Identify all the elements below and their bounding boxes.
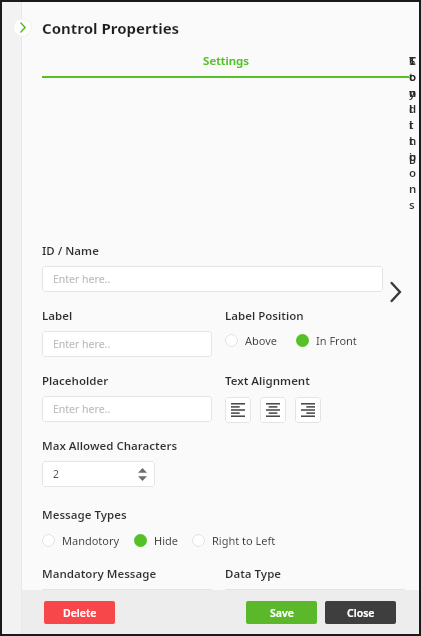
staticText: ID / Name xyxy=(42,243,99,259)
button[interactable]: Right to Left xyxy=(192,533,276,548)
staticText: Text Alignment xyxy=(225,373,310,389)
button[interactable]: Settings xyxy=(42,53,409,78)
staticText: Control Properties xyxy=(42,18,180,38)
staticText: Save xyxy=(270,606,294,620)
button[interactable]: Above xyxy=(225,333,278,348)
staticText: Right to Left xyxy=(212,533,276,548)
button[interactable]: Align center xyxy=(260,397,286,423)
staticText: Placeholder xyxy=(42,373,109,389)
button[interactable]: In Front xyxy=(296,333,357,348)
staticText: Mandatory Message xyxy=(42,566,157,582)
staticText: Enter here.. xyxy=(53,272,111,286)
staticText: Message Types xyxy=(42,507,127,523)
staticText: Delete xyxy=(63,606,97,620)
button[interactable]: Enter here.. xyxy=(42,266,383,292)
staticText: Enter here.. xyxy=(53,337,111,351)
button[interactable]: Mandotory xyxy=(42,533,120,548)
staticText: Label Position xyxy=(225,308,304,324)
button[interactable]: Enter here.. xyxy=(42,396,212,422)
button[interactable]: Hide xyxy=(134,533,178,548)
button[interactable]: Close xyxy=(325,601,396,624)
button[interactable]: Delete xyxy=(44,601,115,624)
button[interactable]: 2 xyxy=(42,461,155,487)
button[interactable]: Stepper xyxy=(138,468,147,481)
staticText: Hide xyxy=(154,533,178,548)
button[interactable]: Next xyxy=(383,280,407,304)
button[interactable]: Expand panel xyxy=(13,18,32,37)
staticText: Enter here.. xyxy=(53,402,111,416)
staticText: In Front xyxy=(316,333,357,348)
button[interactable]: Enter here.. xyxy=(42,331,212,357)
staticText: Close xyxy=(347,606,375,620)
staticText: Max Allowed Characters xyxy=(42,438,178,454)
staticText: Mandotory xyxy=(62,533,120,548)
staticText: Above xyxy=(245,333,278,348)
staticText: Data Type xyxy=(225,566,282,582)
staticText: Label xyxy=(42,308,73,324)
staticText: Settings xyxy=(203,53,249,69)
button[interactable]: Align left xyxy=(225,397,251,423)
button[interactable]: Save xyxy=(246,601,317,624)
button[interactable]: Align right xyxy=(295,397,321,423)
staticText: 2 xyxy=(53,467,60,481)
